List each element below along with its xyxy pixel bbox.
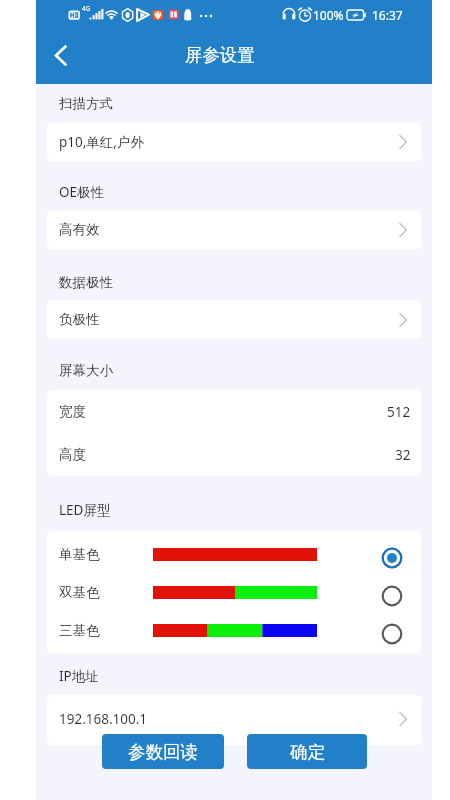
button[interactable]: 参数回读 [102,734,224,769]
button[interactable]: Back [41,36,81,76]
button[interactable]: 三基色 [47,611,421,649]
staticText: 参数回读 [128,741,198,763]
staticText: 屏幕大小 [59,362,113,379]
staticText: 屏参设置 [185,44,255,66]
staticText: 高度 [59,446,86,463]
button[interactable]: 负极性 [47,300,421,339]
staticText: 单基色 [59,546,100,563]
staticText: LED屏型 [59,501,111,519]
staticText: 负极性 [59,311,100,328]
button[interactable]: 高度 [47,433,421,476]
staticText: 32 [395,446,411,464]
staticText: 4G [82,4,91,13]
staticText: 高有效 [59,221,100,238]
staticText: 确定 [290,741,325,763]
staticText: p10,单红,户外 [59,133,144,151]
button[interactable]: 宽度 [47,390,421,433]
button[interactable]: 192.168.100.1 [47,695,421,745]
staticText: OE极性 [59,183,105,201]
staticText: IP地址 [59,667,99,685]
staticText: 双基色 [59,584,100,601]
staticText: 数据极性 [59,274,113,291]
button[interactable]: 双基色 [47,573,421,611]
staticText: 192.168.100.1 [59,710,148,728]
staticText: 扫描方式 [59,95,113,112]
other: 双基色 [381,585,403,607]
button[interactable]: 高有效 [47,210,421,249]
staticText: 100% [313,7,344,23]
button[interactable]: p10,单红,户外 [47,122,421,161]
staticText: 宽度 [59,403,86,420]
other: 单基色 selected [381,547,403,569]
staticText: 16:37 [372,7,403,23]
button[interactable]: 确定 [247,734,367,769]
staticText: 三基色 [59,622,100,639]
other: 三基色 [381,623,403,645]
staticText: 512 [387,403,411,421]
button[interactable]: 单基色 [47,535,421,573]
